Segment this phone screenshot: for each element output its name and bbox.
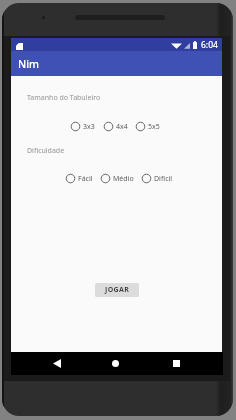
staticText: Tamanho do Tabuleiro	[27, 93, 101, 103]
button[interactable]: Back	[46, 352, 68, 375]
staticText: Fácil	[78, 174, 93, 184]
button[interactable]: Nim	[11, 51, 222, 76]
button[interactable]: 5x5	[135, 121, 160, 132]
button[interactable]: JOGAR	[95, 283, 139, 297]
button[interactable]: Médio	[100, 173, 134, 184]
staticText: 3x3	[83, 122, 95, 132]
staticText: Médio	[113, 174, 134, 184]
button[interactable]: Difícil	[141, 173, 173, 184]
button[interactable]: 4x4	[103, 121, 128, 132]
staticText: Dificuldade	[27, 146, 65, 156]
button[interactable]: Fácil	[65, 173, 93, 184]
staticText: 6:04	[201, 39, 218, 51]
staticText: 4x4	[116, 122, 128, 132]
button[interactable]: Home	[104, 352, 126, 375]
staticText: JOGAR	[105, 285, 130, 295]
staticText: Nim	[18, 57, 39, 71]
button[interactable]: 3x3	[70, 121, 95, 132]
staticText: Difícil	[154, 174, 173, 184]
staticText: 5x5	[148, 122, 160, 132]
button[interactable]: Recent apps	[165, 352, 187, 375]
